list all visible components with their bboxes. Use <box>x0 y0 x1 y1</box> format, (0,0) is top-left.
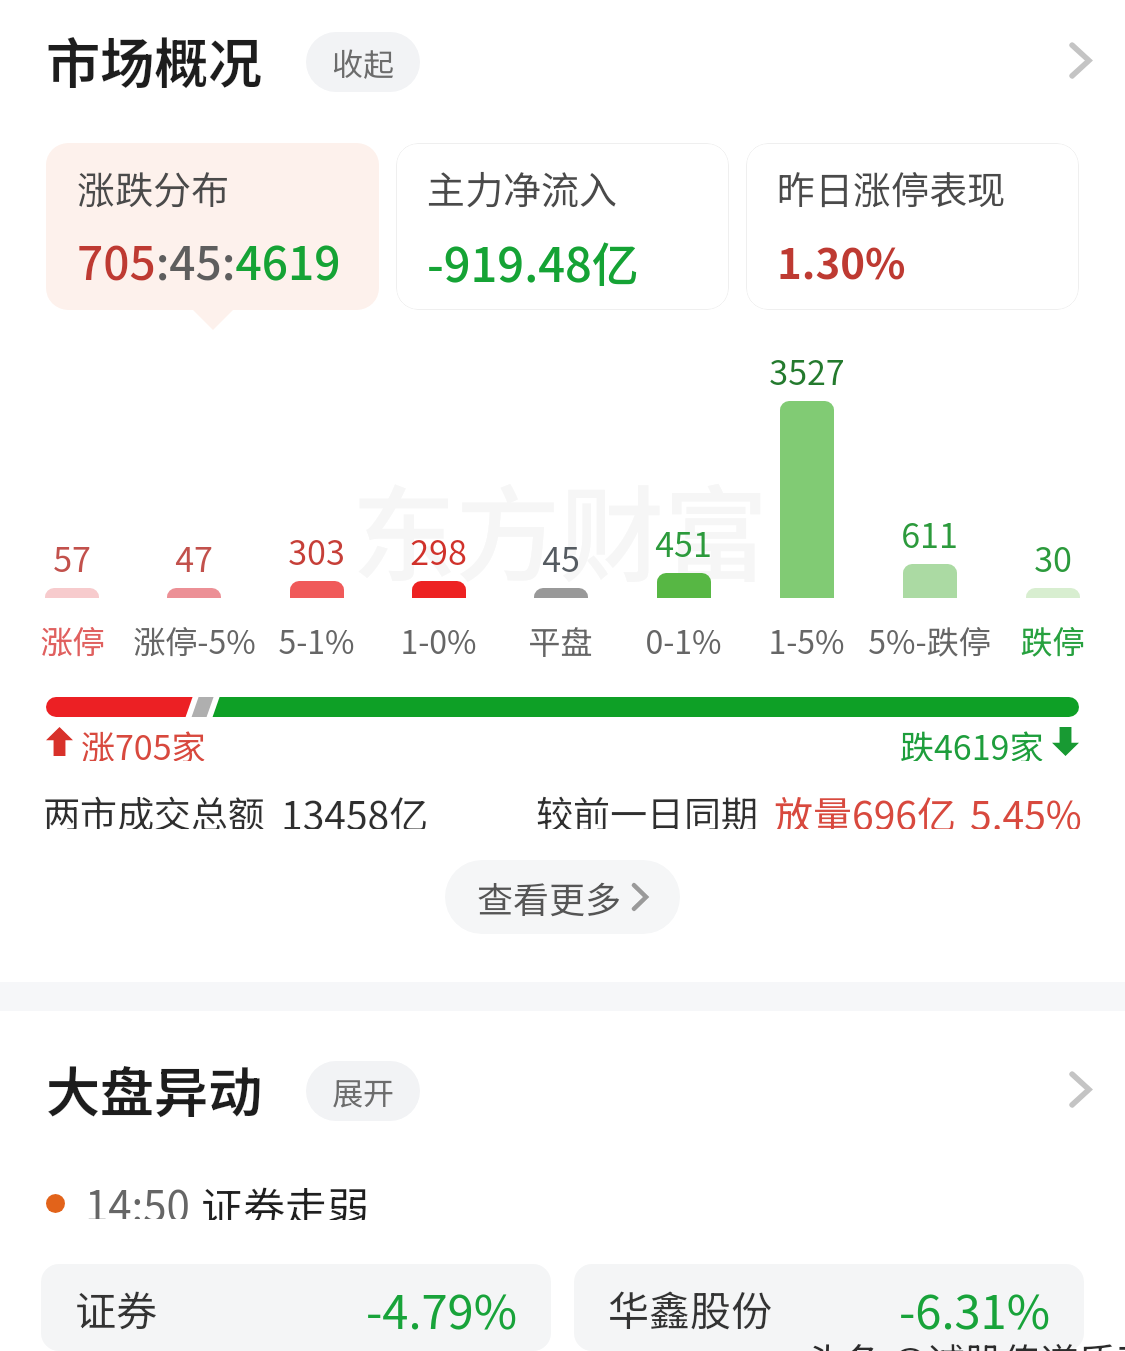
button[interactable]: 查看市场概况 <box>1053 33 1107 87</box>
staticText: 昨日涨停表现 <box>777 160 1006 215</box>
staticText: 5-1% <box>278 617 355 659</box>
staticText: 华鑫股份 <box>608 1278 772 1337</box>
staticText: 平盘 <box>528 617 593 659</box>
staticText: 大盘异动 <box>46 1049 262 1127</box>
staticText: 14:50 <box>85 1173 190 1219</box>
button[interactable]: 华鑫股份 <box>574 1264 1084 1351</box>
staticText: 涨停 <box>40 617 105 659</box>
button[interactable]: 14:50 <box>0 1171 1125 1217</box>
staticText: 涨跌分布 <box>77 160 230 215</box>
staticText: 涨705家 <box>81 721 206 761</box>
button[interactable]: 主力净流入 <box>396 143 729 310</box>
staticText: 57 <box>53 533 91 582</box>
staticText: 收起 <box>332 40 394 85</box>
staticText: 5.45% <box>970 785 1082 829</box>
staticText: 1-5% <box>768 617 845 659</box>
staticText: 45 <box>542 533 580 582</box>
staticText: 两市成交总额 <box>43 785 265 829</box>
staticText: 303 <box>288 526 345 575</box>
button[interactable]: 昨日涨停表现 <box>746 143 1079 310</box>
staticText: -4.79% <box>366 1274 517 1342</box>
staticText: 298 <box>410 526 467 575</box>
button[interactable]: 涨705家 <box>0 721 1125 761</box>
staticText: -919.48亿 <box>427 227 639 295</box>
staticText: 1.30% <box>777 230 906 291</box>
staticText: 展开 <box>332 1069 394 1114</box>
staticText: 跌4619家 <box>900 721 1044 761</box>
staticText: 705:45:4619 <box>77 227 341 294</box>
staticText: 查看更多 <box>477 871 622 923</box>
staticText: 涨停-5% <box>133 617 255 659</box>
staticText: 市场概况 <box>46 20 262 98</box>
staticText: 证券 <box>75 1278 157 1337</box>
staticText: 放量696亿 <box>774 785 956 829</box>
staticText: 跌停 <box>1020 617 1085 659</box>
staticText: 较前一日同期 <box>536 785 758 829</box>
button[interactable]: 证券 <box>41 1264 551 1351</box>
staticText: 451 <box>655 518 712 567</box>
staticText: 主力净流入 <box>427 160 618 215</box>
staticText: 0-1% <box>645 617 722 659</box>
staticText: -6.31% <box>899 1274 1050 1342</box>
button[interactable]: 查看大盘异动 <box>1053 1062 1107 1116</box>
staticText: 证券走弱 <box>201 1174 370 1220</box>
staticText: 东方财富 <box>352 452 769 603</box>
button[interactable]: 查看更多 <box>445 860 680 934</box>
button[interactable]: 涨跌分布图 <box>0 330 1125 659</box>
button[interactable]: 涨跌分布 <box>46 143 379 310</box>
staticText: 47 <box>175 533 213 582</box>
button[interactable]: 展开 <box>306 1061 420 1121</box>
staticText: 1-0% <box>400 617 477 659</box>
staticText: 13458亿 <box>281 785 429 829</box>
staticText: 611 <box>901 509 958 558</box>
staticText: 30 <box>1034 533 1072 582</box>
staticText: 头条 @诚股传道质不近 <box>806 1332 1125 1351</box>
button[interactable]: 收起 <box>306 32 420 92</box>
staticText: 3527 <box>769 346 845 395</box>
staticText: 5%-跌停 <box>868 617 991 659</box>
